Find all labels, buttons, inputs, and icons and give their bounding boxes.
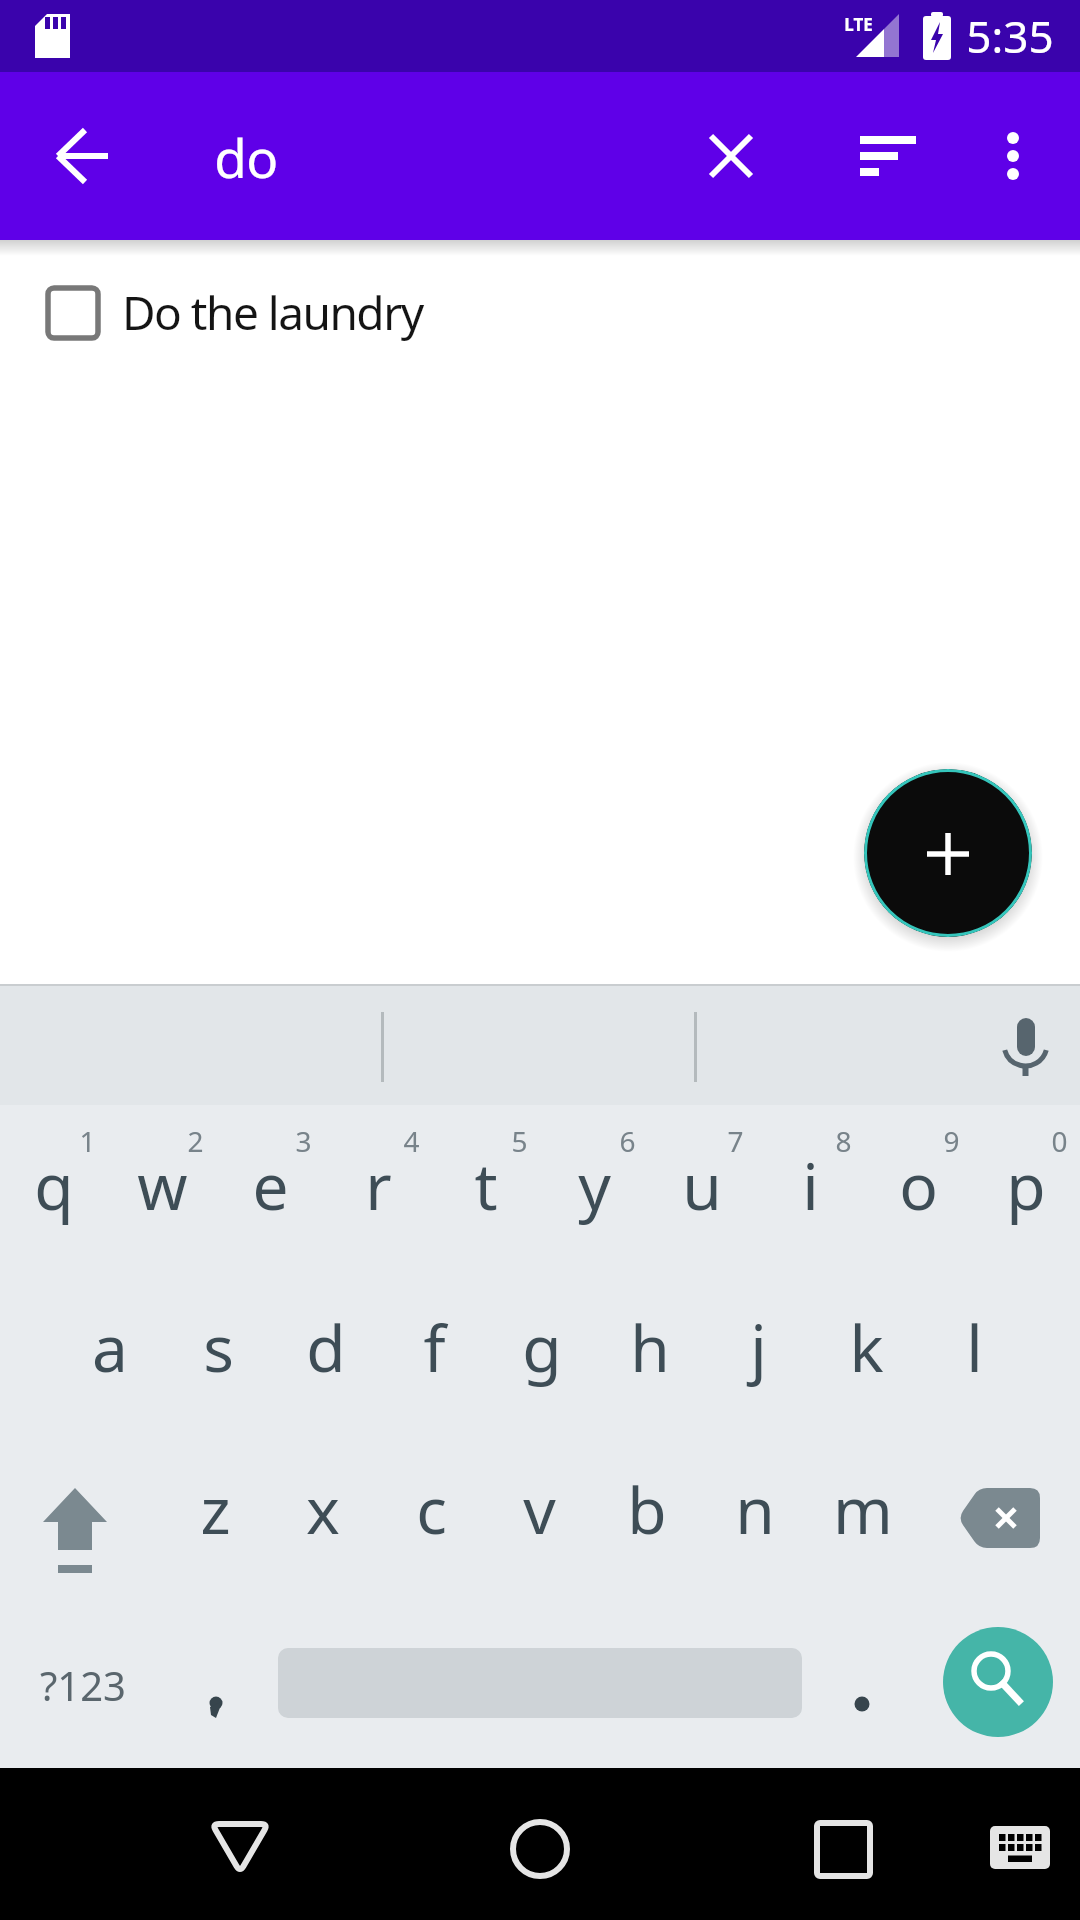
- button[interactable]: [864, 769, 1032, 937]
- staticText: u: [682, 1142, 722, 1229]
- staticText: 5:35: [966, 6, 1054, 66]
- staticText: b: [627, 1466, 667, 1553]
- staticText: e: [252, 1142, 289, 1229]
- staticText: Do the laundry: [122, 281, 423, 344]
- staticText: s: [203, 1304, 234, 1391]
- staticText: 6: [619, 1122, 636, 1160]
- staticText: w: [137, 1142, 188, 1229]
- staticText: n: [735, 1466, 775, 1553]
- button[interactable]: [56, 1279, 164, 1445]
- button[interactable]: [943, 1627, 1053, 1737]
- button[interactable]: [960, 1796, 1080, 1896]
- button[interactable]: [940, 1460, 1070, 1580]
- staticText: a: [92, 1304, 128, 1391]
- button[interactable]: [683, 108, 779, 204]
- button[interactable]: [324, 1113, 432, 1279]
- button[interactable]: [771, 1776, 915, 1912]
- button[interactable]: Do the laundry: [0, 262, 1080, 362]
- staticText: 2: [187, 1122, 204, 1160]
- staticText: 7: [727, 1122, 744, 1160]
- button[interactable]: [810, 1625, 915, 1745]
- button[interactable]: [168, 1776, 312, 1912]
- staticText: 1: [79, 1122, 96, 1160]
- button[interactable]: ?123: [15, 1625, 150, 1745]
- button[interactable]: [704, 1279, 812, 1445]
- button[interactable]: [488, 1279, 596, 1445]
- staticText: m: [833, 1466, 893, 1553]
- staticText: ?123: [40, 1658, 126, 1712]
- staticText: q: [34, 1142, 74, 1229]
- staticText: 9: [943, 1122, 960, 1160]
- button[interactable]: [972, 1113, 1080, 1279]
- staticText: l: [966, 1304, 983, 1391]
- button[interactable]: [272, 1279, 380, 1445]
- button[interactable]: [108, 1113, 216, 1279]
- staticText: f: [423, 1304, 446, 1391]
- button[interactable]: [809, 1445, 917, 1611]
- button[interactable]: [812, 1279, 920, 1445]
- button[interactable]: [161, 1445, 269, 1611]
- staticText: 0: [1051, 1122, 1068, 1160]
- staticText: 4: [403, 1122, 420, 1160]
- button[interactable]: [216, 1113, 324, 1279]
- button[interactable]: [596, 1279, 704, 1445]
- button[interactable]: [164, 1279, 272, 1445]
- staticText: j: [750, 1304, 767, 1391]
- button[interactable]: [701, 1445, 809, 1611]
- button[interactable]: [839, 108, 935, 204]
- staticText: c: [416, 1466, 447, 1553]
- staticText: d: [306, 1304, 346, 1391]
- staticText: x: [306, 1466, 340, 1553]
- button[interactable]: [648, 1113, 756, 1279]
- staticText: p: [1006, 1142, 1046, 1229]
- button[interactable]: [485, 1445, 593, 1611]
- staticText: g: [522, 1304, 562, 1391]
- staticText: t: [474, 1142, 498, 1229]
- staticText: r: [365, 1142, 392, 1229]
- button[interactable]: [432, 1113, 540, 1279]
- button[interactable]: [920, 1279, 1028, 1445]
- staticText: do: [214, 121, 278, 193]
- button[interactable]: [36, 108, 132, 204]
- button[interactable]: [160, 1625, 270, 1745]
- button[interactable]: [269, 1445, 377, 1611]
- staticText: i: [802, 1142, 819, 1229]
- button[interactable]: [756, 1113, 864, 1279]
- staticText: 3: [295, 1122, 312, 1160]
- button[interactable]: [985, 994, 1065, 1094]
- staticText: v: [523, 1466, 556, 1553]
- button[interactable]: [15, 1462, 145, 1592]
- staticText: h: [630, 1304, 670, 1391]
- staticText: y: [578, 1142, 611, 1229]
- staticText: 8: [835, 1122, 852, 1160]
- button[interactable]: [864, 1113, 972, 1279]
- staticText: 5: [511, 1122, 528, 1160]
- button[interactable]: [540, 1113, 648, 1279]
- button[interactable]: [965, 108, 1061, 204]
- button[interactable]: [380, 1279, 488, 1445]
- staticText: z: [200, 1466, 231, 1553]
- staticText: k: [849, 1304, 884, 1391]
- button[interactable]: [593, 1445, 701, 1611]
- button[interactable]: [377, 1445, 485, 1611]
- staticText: LTE: [844, 13, 873, 36]
- button[interactable]: [468, 1776, 612, 1912]
- staticText: o: [899, 1142, 938, 1229]
- button[interactable]: [0, 1113, 108, 1279]
